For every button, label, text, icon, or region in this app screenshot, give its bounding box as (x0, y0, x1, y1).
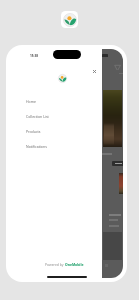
button[interactable]: Collection List (11, 109, 102, 124)
button[interactable]: Close (93, 70, 96, 73)
staticText: 15:38 (30, 54, 38, 58)
button[interactable]: Products (11, 124, 102, 139)
staticText: Powered by (45, 262, 65, 267)
staticText: Notifications (26, 144, 47, 149)
staticText: OneMobile (65, 262, 84, 267)
staticText: Home (26, 99, 36, 104)
staticText: Collection List (26, 114, 49, 119)
button[interactable]: Notifications (11, 139, 102, 154)
button[interactable]: App icon (61, 11, 78, 28)
button[interactable]: Home (11, 94, 102, 109)
staticText: Products (26, 129, 41, 134)
